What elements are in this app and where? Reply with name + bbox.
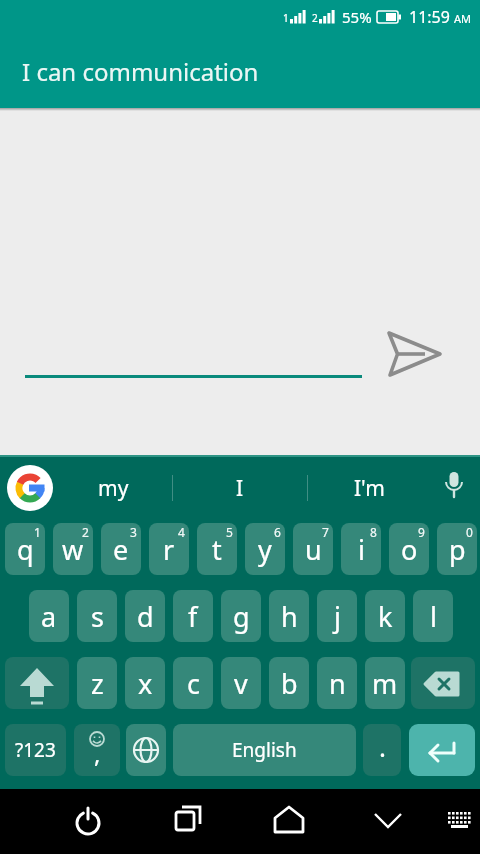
staticText: 8 bbox=[370, 524, 377, 540]
button[interactable]: p bbox=[437, 523, 477, 575]
button[interactable] bbox=[383, 320, 445, 380]
button[interactable]: English bbox=[173, 724, 356, 776]
staticText: 6 bbox=[274, 524, 281, 540]
staticText: h bbox=[281, 598, 298, 635]
staticText: 2 bbox=[312, 11, 318, 25]
staticText: w bbox=[62, 531, 84, 568]
button[interactable] bbox=[364, 797, 412, 845]
button[interactable] bbox=[265, 797, 313, 845]
staticText: y bbox=[258, 531, 272, 568]
button[interactable]: t bbox=[197, 523, 237, 575]
button[interactable]: m bbox=[365, 657, 405, 709]
button[interactable]: d bbox=[125, 590, 165, 642]
staticText: I can communication bbox=[22, 55, 259, 88]
button[interactable]: l bbox=[413, 590, 453, 642]
button[interactable]: k bbox=[365, 590, 405, 642]
staticText: d bbox=[137, 598, 154, 635]
button[interactable] bbox=[7, 465, 53, 511]
staticText: English bbox=[232, 737, 297, 763]
staticText: b bbox=[281, 665, 298, 702]
button[interactable]: c bbox=[173, 657, 213, 709]
staticText: a bbox=[41, 598, 57, 635]
button[interactable]: ?123 bbox=[5, 724, 66, 776]
button[interactable] bbox=[164, 797, 212, 845]
button[interactable]: i bbox=[341, 523, 381, 575]
button[interactable]: . bbox=[363, 724, 401, 776]
staticText: 1 bbox=[283, 11, 289, 25]
button[interactable]: y bbox=[245, 523, 285, 575]
button[interactable] bbox=[442, 800, 480, 844]
staticText: t bbox=[212, 531, 222, 568]
button[interactable] bbox=[64, 797, 112, 845]
button[interactable]: u bbox=[293, 523, 333, 575]
staticText: o bbox=[401, 531, 418, 568]
button[interactable]: v bbox=[221, 657, 261, 709]
staticText: , bbox=[94, 737, 101, 770]
staticText: p bbox=[449, 531, 466, 568]
button[interactable]: my bbox=[55, 463, 172, 513]
staticText: 2 bbox=[82, 524, 89, 540]
staticText: . bbox=[379, 729, 386, 764]
staticText: q bbox=[17, 531, 34, 568]
staticText: v bbox=[234, 665, 248, 702]
staticText: j bbox=[334, 598, 341, 635]
staticText: r bbox=[163, 531, 175, 568]
staticText: 55% bbox=[342, 7, 372, 27]
staticText: I bbox=[236, 474, 244, 503]
staticText: c bbox=[187, 665, 200, 702]
staticText: u bbox=[305, 531, 322, 568]
staticText: e bbox=[113, 531, 129, 568]
staticText: ?123 bbox=[15, 737, 56, 763]
staticText: 3 bbox=[130, 524, 137, 540]
staticText: l bbox=[430, 598, 437, 635]
button[interactable]: h bbox=[269, 590, 309, 642]
button[interactable]: b bbox=[269, 657, 309, 709]
staticText: k bbox=[378, 598, 393, 635]
button[interactable] bbox=[438, 470, 470, 502]
button[interactable]: g bbox=[221, 590, 261, 642]
button[interactable] bbox=[411, 657, 475, 709]
staticText: s bbox=[91, 598, 104, 635]
staticText: 11:59 AM bbox=[409, 6, 472, 28]
staticText: z bbox=[91, 665, 104, 702]
button[interactable]: q bbox=[5, 523, 45, 575]
button[interactable]: I bbox=[172, 463, 307, 513]
button[interactable] bbox=[126, 724, 166, 776]
button[interactable]: , bbox=[74, 724, 120, 776]
staticText: I'm bbox=[354, 474, 385, 503]
staticText: 4 bbox=[178, 524, 185, 540]
button[interactable]: r bbox=[149, 523, 189, 575]
staticText: 9 bbox=[418, 524, 425, 540]
button[interactable]: f bbox=[173, 590, 213, 642]
staticText: m bbox=[372, 665, 398, 702]
button[interactable]: a bbox=[29, 590, 69, 642]
staticText: 7 bbox=[322, 524, 329, 540]
staticText: 1 bbox=[34, 524, 41, 540]
button[interactable]: z bbox=[77, 657, 117, 709]
staticText: i bbox=[358, 531, 365, 568]
button[interactable]: n bbox=[317, 657, 357, 709]
staticText: f bbox=[188, 598, 198, 635]
button[interactable]: x bbox=[125, 657, 165, 709]
staticText: 0 bbox=[466, 524, 473, 540]
button[interactable]: o bbox=[389, 523, 429, 575]
staticText: x bbox=[138, 665, 153, 702]
button[interactable]: I'm bbox=[307, 463, 432, 513]
button[interactable]: w bbox=[53, 523, 93, 575]
button[interactable]: e bbox=[101, 523, 141, 575]
staticText: n bbox=[329, 665, 346, 702]
staticText: 5 bbox=[226, 524, 233, 540]
button[interactable] bbox=[5, 657, 69, 709]
staticText: my bbox=[98, 474, 129, 503]
staticText: g bbox=[233, 598, 250, 635]
button[interactable]: j bbox=[317, 590, 357, 642]
button[interactable]: s bbox=[77, 590, 117, 642]
button[interactable] bbox=[409, 724, 475, 776]
